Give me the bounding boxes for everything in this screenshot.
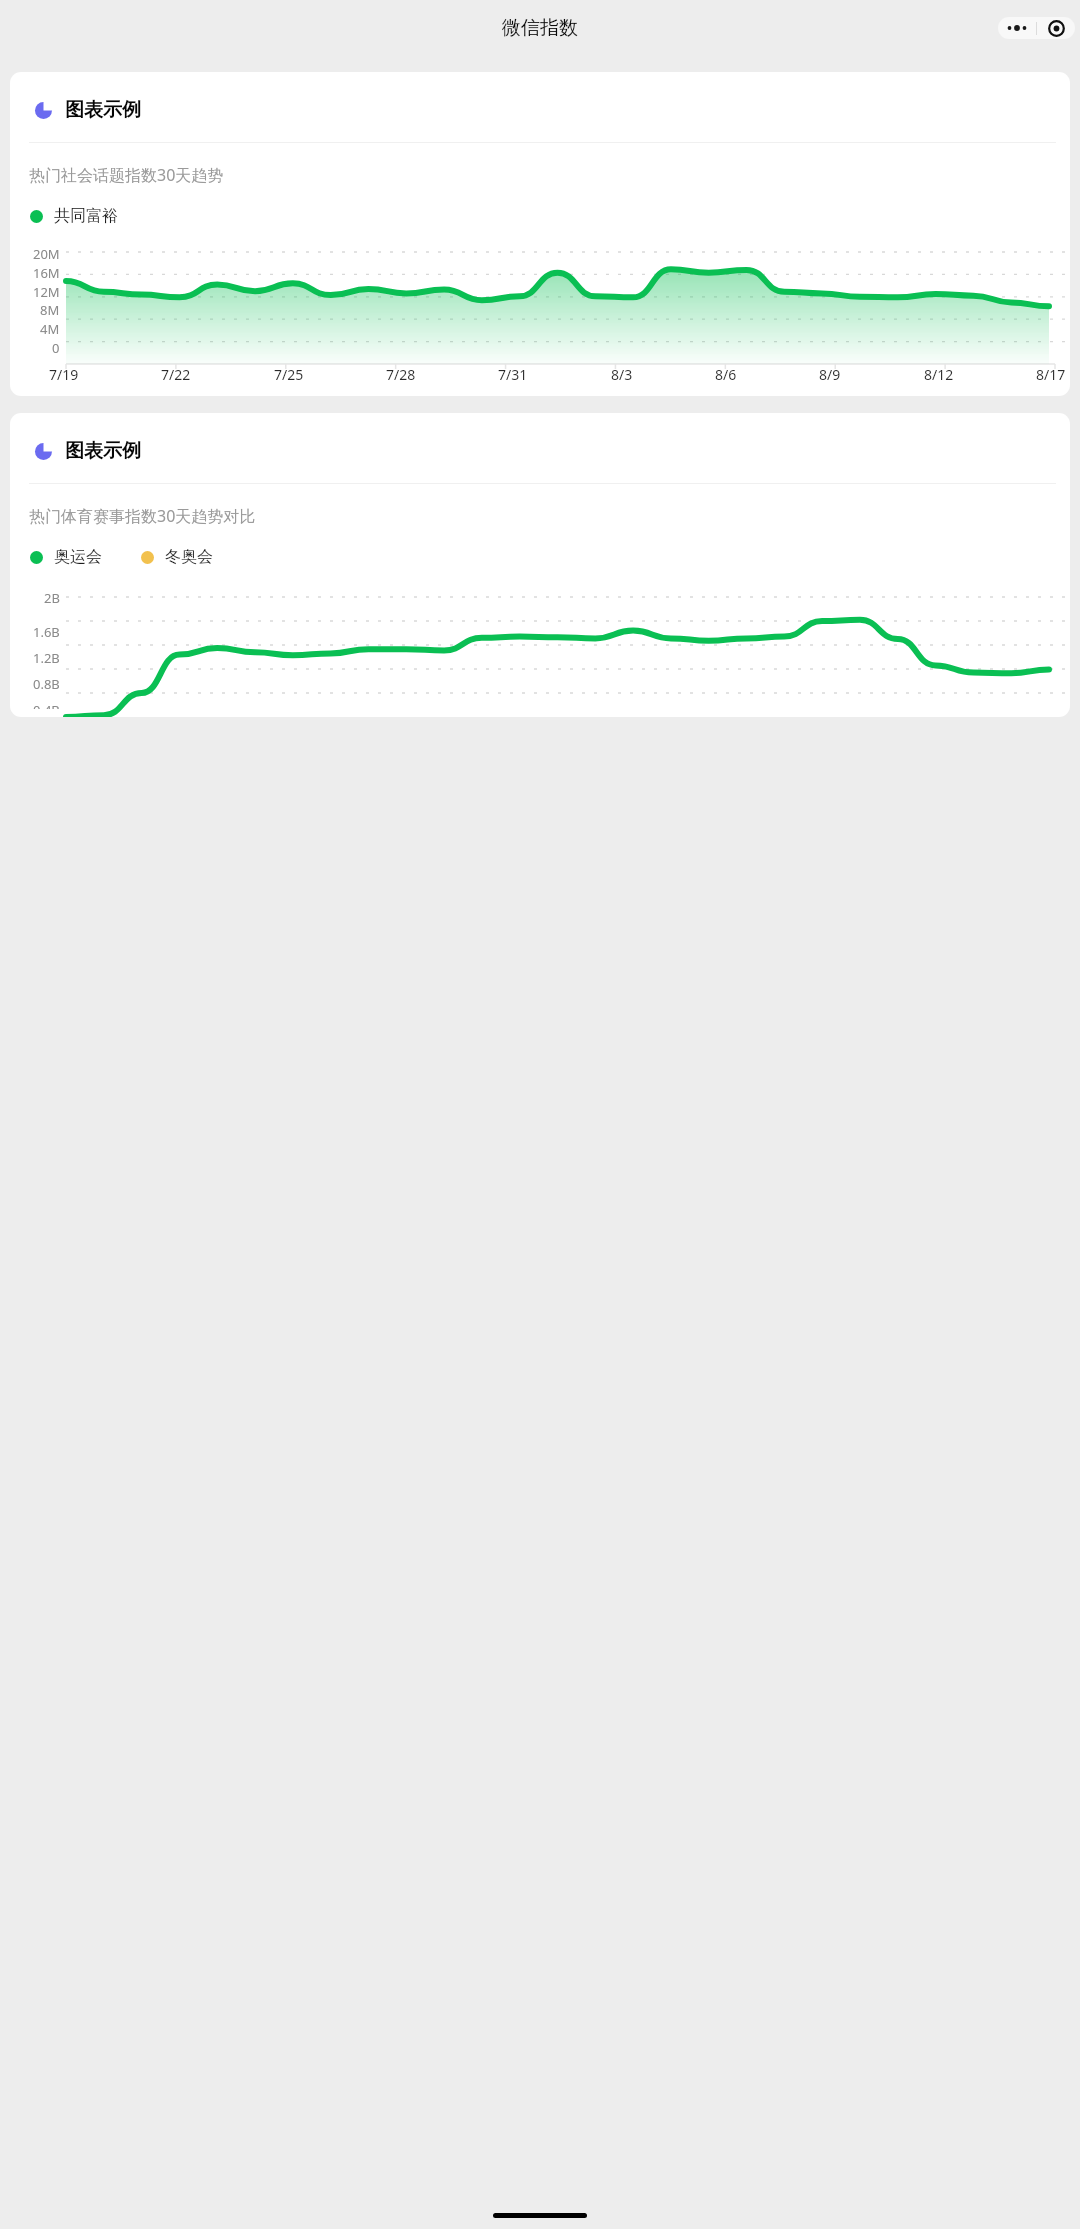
staticText: 0.4B [33,701,60,709]
staticText: 7/25 [274,365,304,384]
staticText: 热门社会话题指数30天趋势 [29,164,224,186]
button[interactable]: 图表示例 [10,413,1070,717]
staticText: 8/9 [819,365,841,384]
staticText: 1.6B [33,623,60,641]
staticText: 12M [33,283,60,301]
staticText: 8/3 [611,365,633,384]
staticText: 图表示例 [65,439,141,463]
staticText: 1.2B [33,649,60,667]
staticText: 7/19 [49,365,79,384]
staticText: 2B [44,589,60,607]
staticText: 8/6 [715,365,737,384]
staticText: 0.8B [33,675,60,693]
staticText: 8/12 [924,365,954,384]
staticText: 4M [40,320,60,338]
staticText: 16M [33,264,60,282]
staticText: 奥运会 [54,547,102,567]
staticText: 7/22 [161,365,191,384]
button[interactable]: 图表示例 [10,72,1070,396]
staticText: 20M [33,245,60,263]
staticText: 7/31 [498,365,528,384]
staticText: 8M [40,301,60,319]
button[interactable]: Close mini program [1037,17,1075,39]
staticText: 冬奥会 [165,547,213,567]
staticText: 图表示例 [65,98,141,122]
staticText: 0 [52,339,60,357]
staticText: 8/17 [1036,365,1066,384]
button[interactable]: More options [998,17,1036,39]
staticText: 7/28 [386,365,416,384]
staticText: 共同富裕 [54,206,118,226]
staticText: 微信指数 [502,16,578,40]
staticText: 热门体育赛事指数30天趋势对比 [29,505,256,527]
